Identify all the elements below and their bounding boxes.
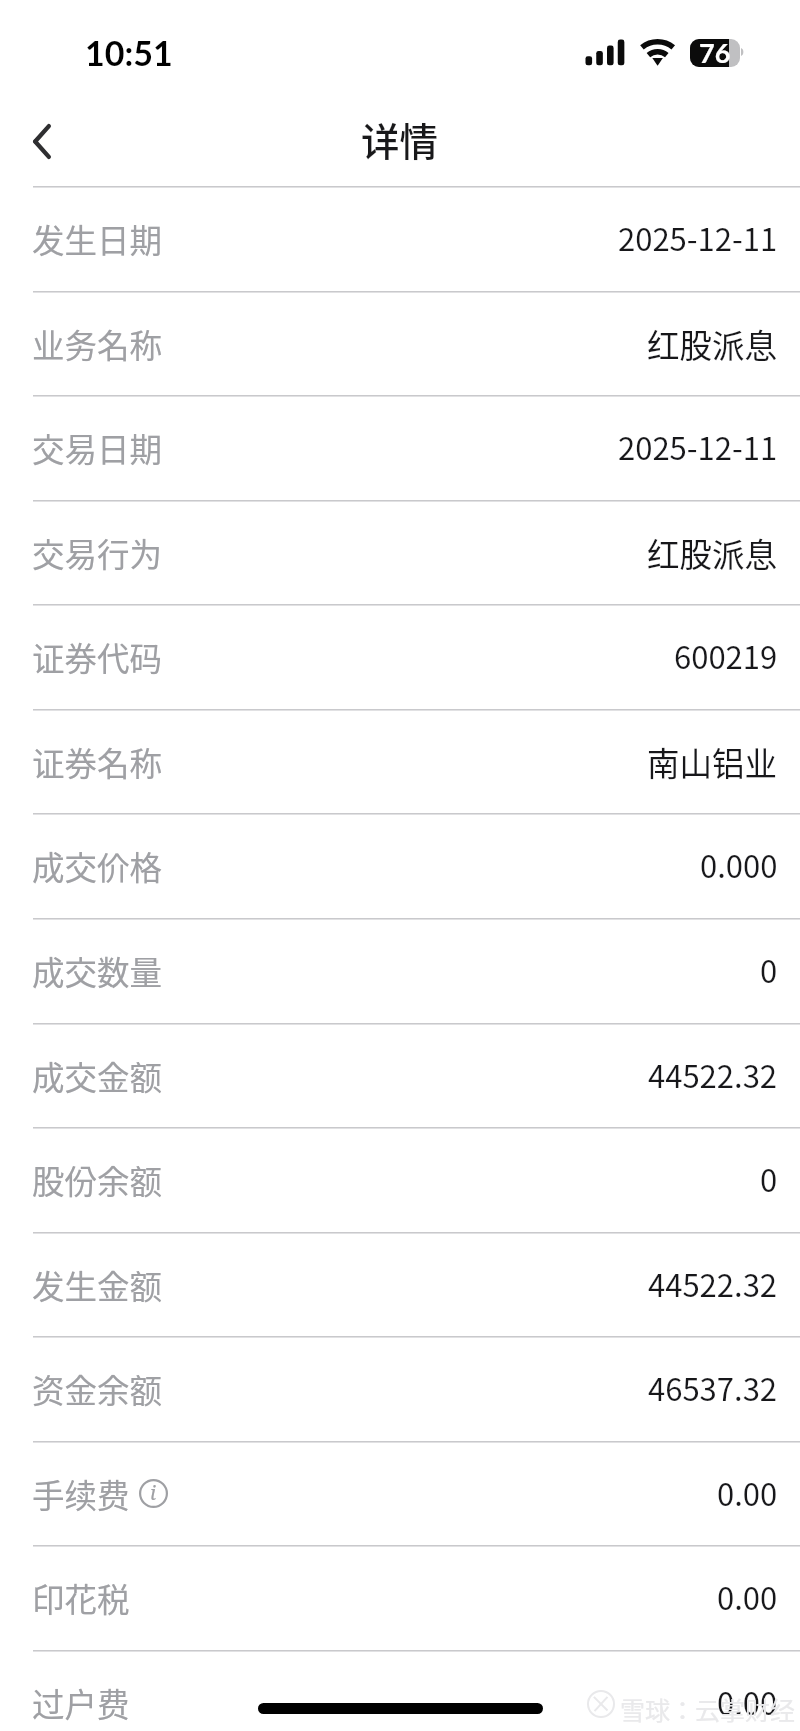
button[interactable]: 资金余额 bbox=[0, 1336, 800, 1441]
button[interactable]: 发生日期 bbox=[0, 186, 800, 291]
staticText: 44522.32 bbox=[648, 1261, 778, 1306]
staticText: 手续费 bbox=[32, 1470, 130, 1517]
button[interactable]: 手续费 bbox=[0, 1441, 800, 1545]
button[interactable]: 交易行为 bbox=[0, 500, 800, 604]
staticText: 证券名称 bbox=[32, 738, 163, 785]
button[interactable]: Back bbox=[0, 97, 88, 185]
staticText: 红股派息 bbox=[647, 320, 778, 367]
staticText: 0 bbox=[760, 947, 778, 992]
button[interactable]: 印花税 bbox=[0, 1545, 800, 1650]
staticText: 业务名称 bbox=[32, 320, 163, 367]
staticText: 资金余额 bbox=[32, 1365, 163, 1412]
staticText: 发生日期 bbox=[32, 215, 163, 262]
staticText: 成交数量 bbox=[32, 947, 163, 994]
staticText: 76 bbox=[699, 39, 731, 64]
staticText: 0.000 bbox=[700, 842, 778, 887]
staticText: 2025-12-11 bbox=[618, 215, 778, 260]
button[interactable]: 手续费说明 bbox=[139, 1479, 168, 1508]
staticText: 成交价格 bbox=[32, 842, 163, 889]
staticText: 详情 bbox=[361, 111, 439, 167]
button[interactable]: 证券代码 bbox=[0, 604, 800, 709]
staticText: 股份余额 bbox=[32, 1156, 163, 1203]
staticText: 证券代码 bbox=[32, 633, 163, 680]
button[interactable]: 股份余额 bbox=[0, 1127, 800, 1232]
staticText: 2025-12-11 bbox=[618, 424, 778, 469]
staticText: 雪球：云掌财经 bbox=[620, 1691, 796, 1727]
staticText: 0.00 bbox=[717, 1679, 778, 1724]
button[interactable]: 交易日期 bbox=[0, 395, 800, 500]
staticText: 过户费 bbox=[32, 1679, 130, 1726]
staticText: 0.00 bbox=[717, 1574, 778, 1619]
staticText: 600219 bbox=[674, 633, 778, 678]
staticText: 44522.32 bbox=[648, 1052, 778, 1097]
staticText: 10:51 bbox=[85, 32, 173, 73]
staticText: 0.00 bbox=[717, 1470, 778, 1515]
staticText: 成交金额 bbox=[32, 1052, 163, 1099]
button[interactable]: 业务名称 bbox=[0, 291, 800, 395]
staticText: 交易行为 bbox=[32, 529, 163, 576]
button[interactable]: 过户费 bbox=[0, 1650, 800, 1731]
staticText: 印花税 bbox=[32, 1574, 130, 1621]
button[interactable]: 证券名称 bbox=[0, 709, 800, 813]
staticText: 交易日期 bbox=[32, 424, 163, 471]
staticText: 发生金额 bbox=[32, 1261, 163, 1308]
staticText: 南山铝业 bbox=[647, 738, 778, 785]
staticText: i bbox=[150, 1479, 157, 1506]
button[interactable]: 发生金额 bbox=[0, 1232, 800, 1336]
button[interactable]: 成交金额 bbox=[0, 1023, 800, 1127]
staticText: 红股派息 bbox=[647, 529, 778, 576]
button[interactable]: 成交价格 bbox=[0, 813, 800, 918]
button[interactable]: 成交数量 bbox=[0, 918, 800, 1023]
staticText: 46537.32 bbox=[648, 1365, 778, 1410]
staticText: 0 bbox=[760, 1156, 778, 1201]
